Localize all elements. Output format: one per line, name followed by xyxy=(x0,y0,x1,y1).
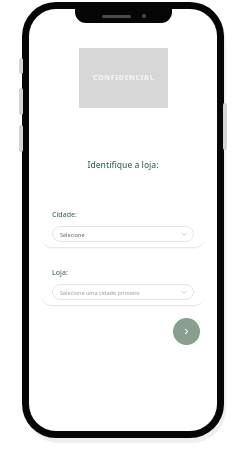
staticText: Loja: xyxy=(52,268,68,278)
button[interactable]: Avançar xyxy=(173,318,200,345)
button[interactable]: Loja: xyxy=(41,260,205,305)
staticText: Identifique a loja: xyxy=(87,159,159,171)
staticText: Selecione uma cidade primeiro xyxy=(60,289,181,296)
staticText: CONFIDENCIAL xyxy=(93,73,155,83)
staticText: Selecione xyxy=(60,231,181,238)
staticText: Cidade: xyxy=(52,210,77,220)
button[interactable]: Selecione uma cidade primeiro xyxy=(52,284,194,300)
button[interactable]: Cidade: xyxy=(41,202,205,247)
button[interactable]: Selecione xyxy=(52,226,194,242)
